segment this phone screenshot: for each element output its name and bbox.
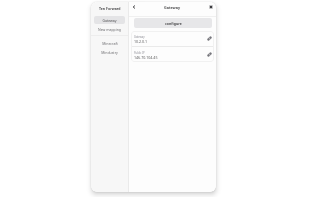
staticText: Gateway — [134, 35, 145, 39]
staticText: 146.70.104.45 — [134, 55, 158, 60]
staticText: Gateway — [102, 18, 117, 23]
button[interactable]: Mindustry — [94, 48, 125, 56]
staticText: configure — [165, 21, 182, 26]
staticText: Ten Forward — [99, 6, 121, 11]
staticText: Mindustry — [101, 50, 118, 55]
button[interactable]: Gateway — [131, 31, 214, 46]
button[interactable]: Copy — [205, 50, 214, 59]
staticText: Public IP — [134, 51, 145, 55]
button[interactable]: Minecraft — [94, 39, 125, 47]
button[interactable]: Copy — [205, 34, 214, 43]
staticText: New mapping — [98, 27, 121, 32]
staticText: 10.2.0.1 — [134, 39, 148, 44]
button[interactable]: Back — [129, 2, 139, 12]
button[interactable]: configure — [134, 18, 212, 28]
button[interactable]: Public IP — [131, 47, 214, 62]
button[interactable]: Close — [206, 2, 216, 12]
button[interactable]: Gateway — [94, 16, 125, 24]
staticText: Gateway — [164, 5, 181, 10]
button[interactable]: New mapping — [94, 25, 125, 33]
staticText: Minecraft — [102, 41, 118, 46]
